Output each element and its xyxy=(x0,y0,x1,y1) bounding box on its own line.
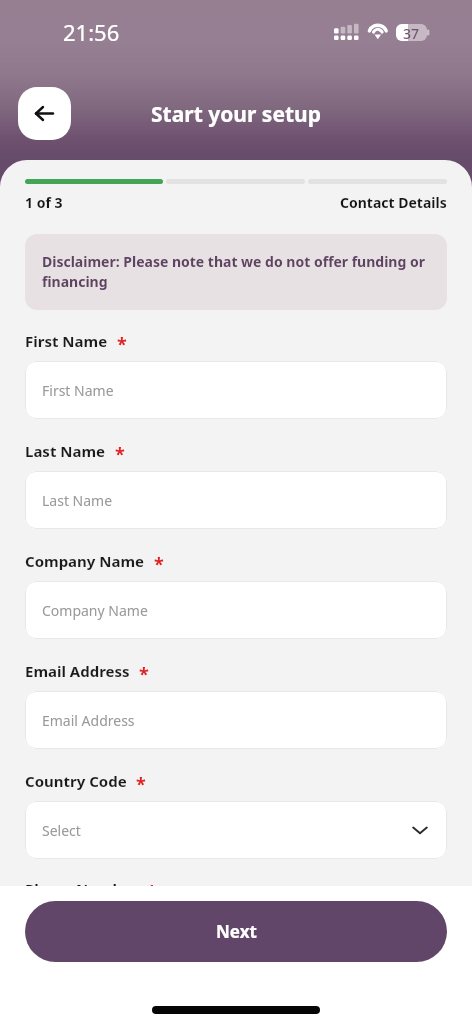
staticText: Disclaimer: Please note that we do not o… xyxy=(42,252,430,292)
button[interactable]: First Name xyxy=(25,361,447,419)
staticText: * xyxy=(136,772,146,793)
staticText: * xyxy=(147,880,157,901)
staticText: * xyxy=(115,442,125,463)
staticText: First Name xyxy=(42,381,114,400)
staticText: Last Name xyxy=(25,441,106,461)
staticText: Email Address xyxy=(25,661,130,681)
button[interactable]: Last Name xyxy=(25,471,447,529)
staticText: Select xyxy=(42,821,81,840)
staticText: 37 xyxy=(403,24,420,41)
staticText: * xyxy=(117,332,127,353)
staticText: First Name xyxy=(25,331,108,351)
staticText: Email Address xyxy=(42,711,135,730)
staticText: Start your setup xyxy=(151,100,321,129)
staticText: * xyxy=(154,552,164,573)
staticText: * xyxy=(139,662,149,683)
staticText: Phone Number xyxy=(25,879,138,899)
button[interactable]: Select xyxy=(25,801,447,859)
staticText: Last Name xyxy=(42,491,113,510)
staticText: Company Name xyxy=(42,601,148,620)
button[interactable]: Next xyxy=(25,901,447,962)
staticText: Country Code xyxy=(25,771,127,791)
staticText: Next xyxy=(216,920,257,943)
button[interactable]: Email Address xyxy=(25,691,447,749)
button[interactable]: Company Name xyxy=(25,581,447,639)
staticText: Contact Details xyxy=(340,193,447,212)
staticText: 1 of 3 xyxy=(25,193,63,212)
staticText: 21:56 xyxy=(63,17,120,47)
staticText: Company Name xyxy=(25,551,145,571)
button[interactable]: Back xyxy=(18,87,71,140)
